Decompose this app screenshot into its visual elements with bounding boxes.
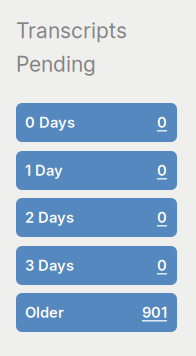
- button[interactable]: 3 Days: [16, 246, 177, 285]
- staticText: 901: [142, 304, 167, 321]
- staticText: 2 Days: [25, 209, 74, 226]
- button[interactable]: Older: [16, 293, 177, 332]
- staticText: Pending: [16, 51, 96, 77]
- button[interactable]: 2 Days: [16, 198, 177, 237]
- staticText: Older: [25, 304, 64, 321]
- button[interactable]: 1 Day: [16, 151, 177, 190]
- staticText: 1 Day: [25, 162, 63, 179]
- staticText: 3 Days: [25, 257, 74, 274]
- button[interactable]: 0 Days: [16, 103, 177, 142]
- staticText: Transcripts: [16, 18, 127, 43]
- staticText: 0: [157, 209, 167, 226]
- staticText: 0: [157, 162, 167, 179]
- staticText: 0 Days: [25, 114, 75, 131]
- staticText: 0: [157, 257, 167, 274]
- staticText: 0: [157, 114, 167, 131]
